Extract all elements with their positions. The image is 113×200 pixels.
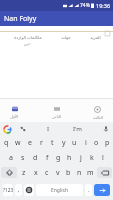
staticText: q — [4, 138, 9, 148]
staticText: m — [87, 168, 94, 178]
button[interactable]: m — [85, 165, 96, 180]
staticText: n — [77, 168, 82, 178]
staticText: f — [46, 153, 49, 163]
staticText: الأول — [10, 114, 19, 119]
button[interactable]: Switch language — [24, 184, 34, 196]
staticText: Nan Foiyy — [4, 14, 37, 24]
button[interactable]: d — [29, 150, 41, 165]
button[interactable]: o — [91, 135, 102, 150]
staticText: j — [80, 153, 82, 163]
button[interactable]: c — [41, 165, 52, 180]
button[interactable]: x — [30, 165, 41, 180]
staticText: English — [51, 187, 69, 194]
button[interactable]: . — [85, 184, 92, 196]
staticText: y — [62, 138, 66, 148]
staticText: d — [33, 153, 38, 163]
button[interactable]: Voice input — [101, 124, 111, 134]
button[interactable]: مكالمات الواردة — [0, 26, 55, 48]
staticText: c — [45, 168, 49, 178]
staticText: v — [56, 168, 60, 178]
button[interactable]: e — [24, 135, 36, 150]
staticText: I'm — [73, 125, 82, 133]
staticText: ?123 — [3, 187, 14, 194]
staticText: 74% — [80, 2, 90, 9]
button[interactable]: z — [18, 165, 30, 180]
staticText: I — [47, 125, 50, 133]
button[interactable]: Google search — [2, 124, 12, 134]
button[interactable]: المزيد — [77, 26, 113, 48]
button[interactable]: t — [47, 135, 58, 150]
button[interactable]: Backspace — [97, 167, 112, 178]
staticText: الثالث — [93, 115, 103, 120]
staticText: , — [18, 186, 20, 194]
staticText: r — [40, 138, 43, 148]
button[interactable]: p — [102, 135, 113, 150]
button[interactable]: r — [36, 135, 47, 150]
button[interactable]: k — [86, 150, 97, 165]
button[interactable]: f — [41, 150, 53, 165]
button[interactable]: , — [15, 184, 22, 196]
button[interactable]: English — [36, 184, 83, 196]
staticText: u — [72, 138, 77, 148]
button[interactable]: j — [75, 150, 86, 165]
button[interactable]: v — [52, 165, 63, 180]
button[interactable]: u — [69, 135, 80, 150]
staticText: . — [88, 186, 90, 194]
staticText: المزيد — [90, 35, 101, 40]
staticText: k — [90, 153, 94, 163]
staticText: اليوم — [24, 42, 31, 46]
button[interactable]: a — [5, 150, 17, 165]
staticText: الثاني — [52, 114, 62, 119]
button[interactable]: ?123 — [3, 184, 13, 196]
staticText: z — [22, 168, 26, 178]
button[interactable]: جهات — [55, 26, 77, 48]
staticText: i — [85, 138, 87, 148]
button[interactable]: b — [63, 165, 74, 180]
button[interactable]: s — [17, 150, 29, 165]
staticText: 19:36 — [96, 2, 111, 9]
button[interactable]: Options — [104, 30, 111, 37]
staticText: مكالمات الواردة — [14, 35, 42, 41]
button[interactable]: الثاني — [42, 99, 71, 122]
staticText: l — [102, 153, 104, 163]
button[interactable]: الثالث — [83, 99, 112, 122]
staticText: x — [34, 168, 38, 178]
button[interactable]: n — [74, 165, 85, 180]
staticText: s — [21, 153, 25, 163]
button[interactable]: q — [0, 135, 12, 150]
staticText: b — [66, 168, 71, 178]
button[interactable]: y — [58, 135, 69, 150]
staticText: جهات — [61, 35, 71, 40]
staticText: g — [56, 153, 61, 163]
button[interactable]: Enter — [94, 184, 110, 196]
button[interactable]: h — [64, 150, 75, 165]
staticText: h — [67, 153, 72, 163]
staticText: w — [15, 138, 21, 148]
staticText: t — [51, 138, 54, 148]
staticText: a — [9, 153, 13, 163]
button[interactable]: Stickers — [18, 124, 28, 134]
button[interactable]: i — [80, 135, 91, 150]
staticText: p — [105, 138, 110, 148]
staticText: e — [28, 138, 32, 148]
button[interactable]: g — [53, 150, 64, 165]
staticText: o — [94, 138, 99, 148]
button[interactable]: Shift — [1, 167, 17, 178]
button[interactable]: l — [97, 150, 108, 165]
button[interactable]: w — [12, 135, 24, 150]
button[interactable]: الأول — [0, 99, 29, 122]
